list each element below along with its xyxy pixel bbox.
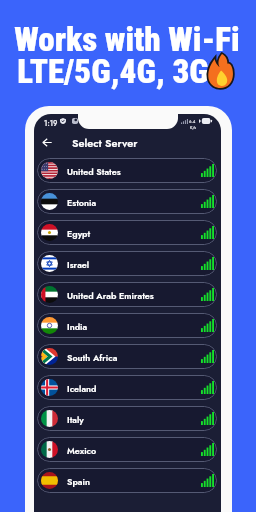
staticText: Spain xyxy=(67,475,90,488)
staticText: Estonia xyxy=(67,196,97,209)
button[interactable]: Egypt xyxy=(37,220,217,245)
staticText: Egypt xyxy=(67,227,91,240)
staticText: United States xyxy=(67,165,121,178)
button[interactable]: United Arab Emirates xyxy=(37,282,217,307)
staticText: 1:19 xyxy=(44,118,58,128)
button[interactable]: India xyxy=(37,313,217,338)
button[interactable]: South Africa xyxy=(37,344,217,369)
staticText: LTE/5G,4G, 3G xyxy=(17,52,209,91)
staticText: South Africa xyxy=(67,351,118,364)
staticText: Italy xyxy=(67,413,84,426)
staticText: K/s xyxy=(190,124,196,130)
button[interactable]: United States xyxy=(37,158,217,183)
staticText: United Arab Emirates xyxy=(67,289,154,302)
staticText: 6.4 xyxy=(189,118,196,124)
staticText: Works with Wi-Fi xyxy=(0,20,255,59)
button[interactable]: Israel xyxy=(37,251,217,276)
staticText: Iceland xyxy=(67,382,97,395)
button[interactable]: Iceland xyxy=(37,375,217,400)
staticText: Mexico xyxy=(67,444,97,457)
button[interactable]: Mexico xyxy=(37,437,217,462)
staticText: India xyxy=(67,320,88,333)
staticText: Israel xyxy=(67,258,90,271)
button[interactable]: Back xyxy=(38,134,55,151)
button[interactable]: Italy xyxy=(37,406,217,431)
button[interactable]: Spain xyxy=(37,468,217,493)
staticText: Select Server xyxy=(72,135,138,151)
button[interactable]: Estonia xyxy=(37,189,217,214)
